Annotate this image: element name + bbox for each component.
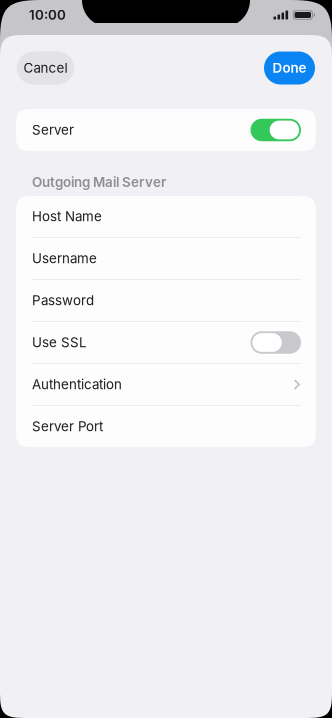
staticText: Password [32,292,94,308]
button[interactable]: Server Port [16,406,316,447]
staticText: Outgoing Mail Server [32,174,166,190]
button[interactable]: Use SSL [16,322,316,363]
button[interactable]: Done [264,51,315,84]
staticText: Server Port [32,418,103,434]
staticText: Use SSL [32,334,87,350]
staticText: 10:00 [29,7,66,23]
staticText: Username [32,250,97,266]
staticText: Server [32,122,74,138]
button[interactable]: Cancel [17,51,74,84]
staticText: Authentication [32,376,122,392]
button[interactable]: Authentication [16,364,316,405]
button[interactable]: Username [16,238,316,279]
button[interactable]: Host Name [16,196,316,237]
staticText: Host Name [32,208,102,224]
staticText: Cancel [23,60,67,76]
staticText: Done [272,60,306,76]
button[interactable]: Password [16,280,316,321]
button[interactable]: Server [16,109,316,151]
